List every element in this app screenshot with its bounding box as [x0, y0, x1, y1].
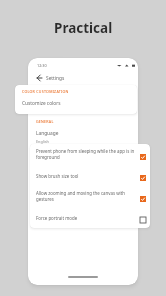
- staticText: Language: [36, 130, 59, 137]
- staticText: Customize colors: [22, 100, 61, 107]
- button[interactable]: Show brush size tool: [36, 165, 146, 186]
- staticText: Show brush size tool: [36, 173, 79, 179]
- staticText: Force portrait mode: [36, 215, 78, 221]
- staticText: English: [36, 139, 49, 144]
- staticText: Practical: [54, 19, 113, 37]
- button[interactable]: COLOR CUSTOMIZATION: [15, 85, 137, 114]
- staticText: GENERAL: [36, 119, 54, 124]
- staticText: Prevent phone from sleeping while the ap…: [36, 148, 135, 161]
- staticText: COLOR CUSTOMIZATION: [22, 89, 69, 94]
- other: Back: [36, 75, 42, 81]
- staticText: Allow zooming and moving the canvas with…: [36, 190, 135, 203]
- staticText: 12:30: [37, 63, 47, 68]
- button[interactable]: Force portrait mode: [36, 207, 146, 228]
- staticText: Settings: [46, 75, 65, 82]
- button[interactable]: Allow zooming and moving the canvas with…: [36, 186, 146, 207]
- button[interactable]: Prevent phone from sleeping while the ap…: [36, 144, 146, 165]
